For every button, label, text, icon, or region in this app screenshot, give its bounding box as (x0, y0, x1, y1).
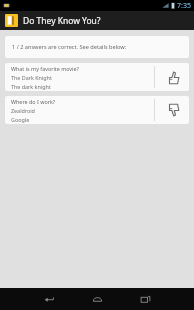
staticText: The dark knight (11, 83, 51, 90)
button[interactable]: Back (25, 288, 73, 310)
button[interactable]: Correct answer (155, 63, 189, 91)
staticText: The Dark Knight (11, 74, 52, 81)
button[interactable]: Where do I work? (5, 96, 189, 124)
staticText: 1 / 2 answers are correct. See details b… (12, 43, 127, 51)
staticText: Where do I work? (11, 98, 56, 105)
staticText: 7:35 (177, 1, 191, 11)
staticText: What is my favorite movie? (11, 65, 79, 72)
button[interactable]: 1 / 2 answers are correct. See details b… (5, 36, 189, 58)
button[interactable]: Wrong answer (155, 96, 189, 124)
staticText: Google (11, 116, 30, 123)
button[interactable]: Recent apps (121, 288, 169, 310)
staticText: Zealdroid (11, 107, 35, 114)
button[interactable]: Home (73, 288, 121, 310)
button[interactable]: App icon (5, 14, 18, 27)
button[interactable]: What is my favorite movie? (5, 63, 189, 91)
staticText: Do They Know You? (23, 15, 101, 27)
